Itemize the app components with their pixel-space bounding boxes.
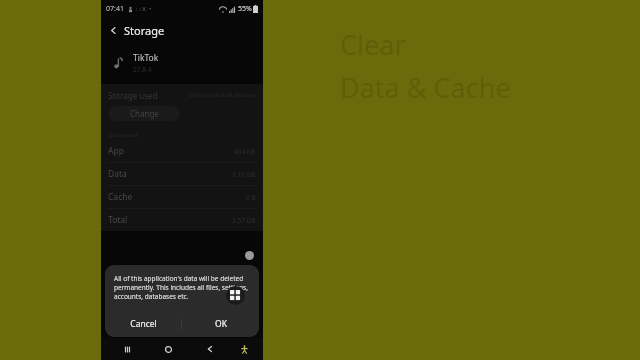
staticText: Cache <box>108 191 133 203</box>
staticText: Internal shared storage <box>189 91 256 99</box>
staticText: : : X • <box>136 5 152 13</box>
button[interactable]: TikTok <box>101 42 263 84</box>
staticText: App <box>108 145 124 157</box>
button[interactable]: Recents <box>107 338 148 360</box>
button[interactable]: Back <box>189 338 230 360</box>
staticText: Cancel <box>130 318 157 330</box>
staticText: Data <box>108 168 127 180</box>
button[interactable]: Data <box>101 163 263 185</box>
button[interactable]: Total <box>101 209 263 231</box>
staticText: 0 B <box>246 193 256 202</box>
staticText: Space used <box>108 131 138 138</box>
staticText: Data & Cache <box>340 69 511 106</box>
staticText: All of this application's data will be d… <box>114 274 250 301</box>
staticText: Change <box>130 108 159 119</box>
staticText: Storage used <box>108 90 158 101</box>
staticText: Storage <box>124 23 165 38</box>
button[interactable]: Apps grid <box>226 286 245 305</box>
button[interactable]: Cache <box>101 186 263 208</box>
staticText: 3.57 GB <box>232 216 256 225</box>
button[interactable]: Change <box>108 106 180 121</box>
button[interactable]: Back <box>106 23 120 37</box>
button[interactable]: Accessibility <box>230 338 259 360</box>
button[interactable]: OK <box>182 311 259 337</box>
staticText: OK <box>215 318 227 330</box>
staticText: 27.8.4 <box>133 65 152 74</box>
staticText: 07:41 <box>106 4 124 14</box>
button[interactable]: App <box>101 140 263 162</box>
staticText: Clear <box>340 26 406 63</box>
button[interactable]: Cancel <box>105 311 181 337</box>
button[interactable]: Home <box>148 338 189 360</box>
staticText: 404 KB <box>234 147 256 156</box>
staticText: Total <box>108 214 128 226</box>
staticText: TikTok <box>133 52 159 64</box>
staticText: 55% <box>238 4 252 14</box>
staticText: 3.16 GB <box>232 170 256 179</box>
